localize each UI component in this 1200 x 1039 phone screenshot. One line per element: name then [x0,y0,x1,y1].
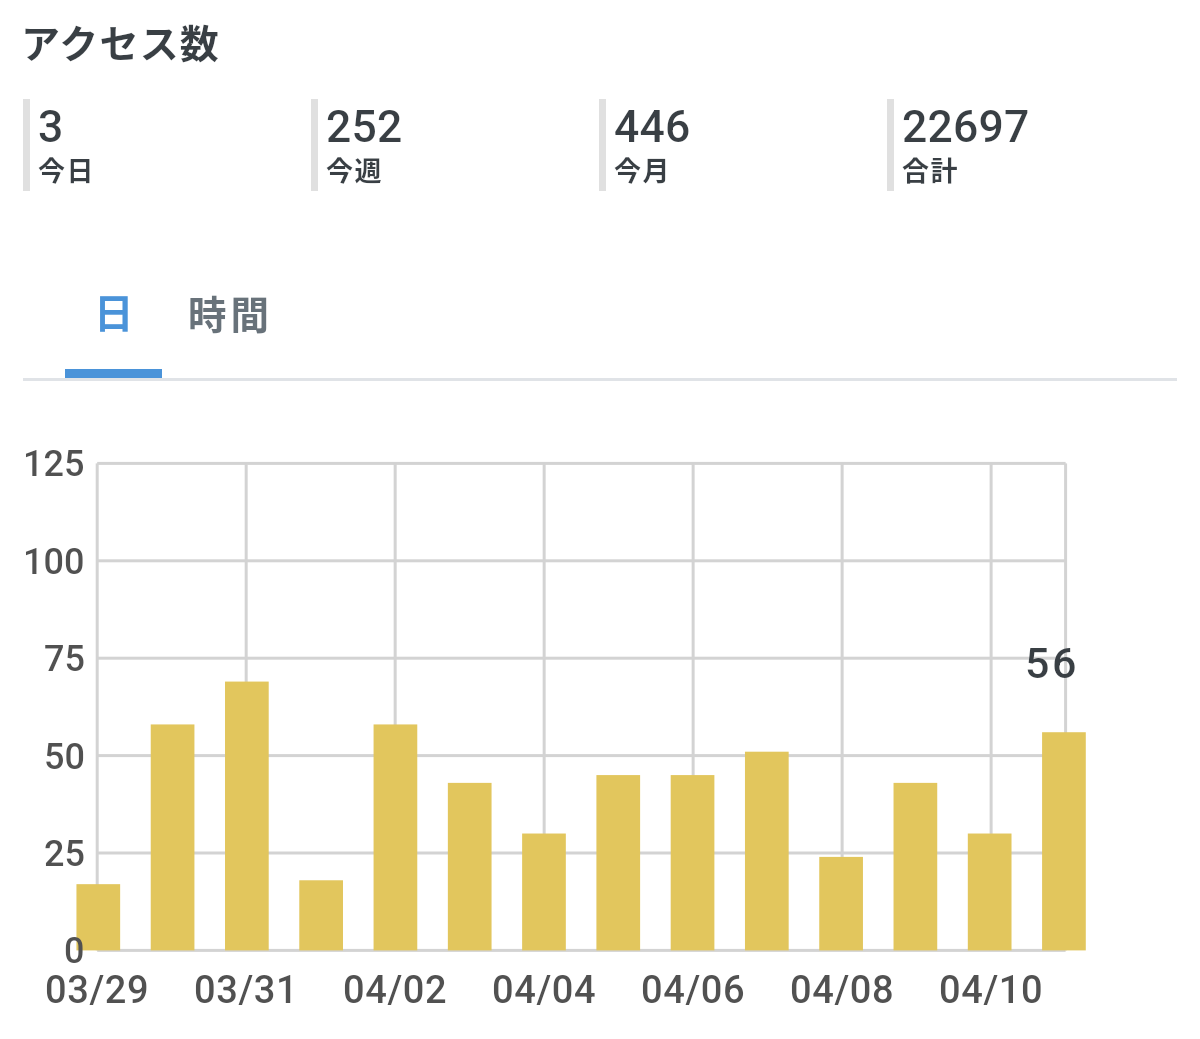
staticText: 04/04 [492,968,597,1013]
staticText: 22697 [902,101,1030,153]
staticText: 04/06 [641,968,746,1013]
staticText: 75 [44,638,85,680]
staticText: 04/02 [343,968,448,1013]
staticText: 今週 [326,150,383,189]
staticText: 25 [44,833,85,875]
button[interactable]: 日 [65,280,162,376]
staticText: 50 [44,736,85,778]
button[interactable]: 時間 [162,280,296,376]
staticText: 04/10 [939,968,1044,1013]
staticText: 252 [326,101,403,153]
staticText: 時間 [188,284,274,340]
button[interactable]: 446 [599,99,879,191]
staticText: 日 [94,282,134,339]
staticText: アクセス数 [21,13,221,69]
staticText: 04/08 [790,968,895,1013]
staticText: 03/31 [194,968,299,1013]
staticText: 125 [23,443,85,485]
staticText: 100 [23,541,85,583]
staticText: 今日 [38,150,95,189]
button[interactable]: 252 [311,99,591,191]
staticText: 03/29 [45,968,150,1013]
button[interactable]: 22697 [887,99,1167,191]
staticText: 今月 [614,150,671,189]
staticText: 3 [38,101,64,153]
staticText: 0 [64,930,85,972]
staticText: 合計 [902,150,959,189]
staticText: 56 [1025,638,1079,688]
button[interactable]: 3 [23,99,303,191]
staticText: 446 [614,101,691,153]
